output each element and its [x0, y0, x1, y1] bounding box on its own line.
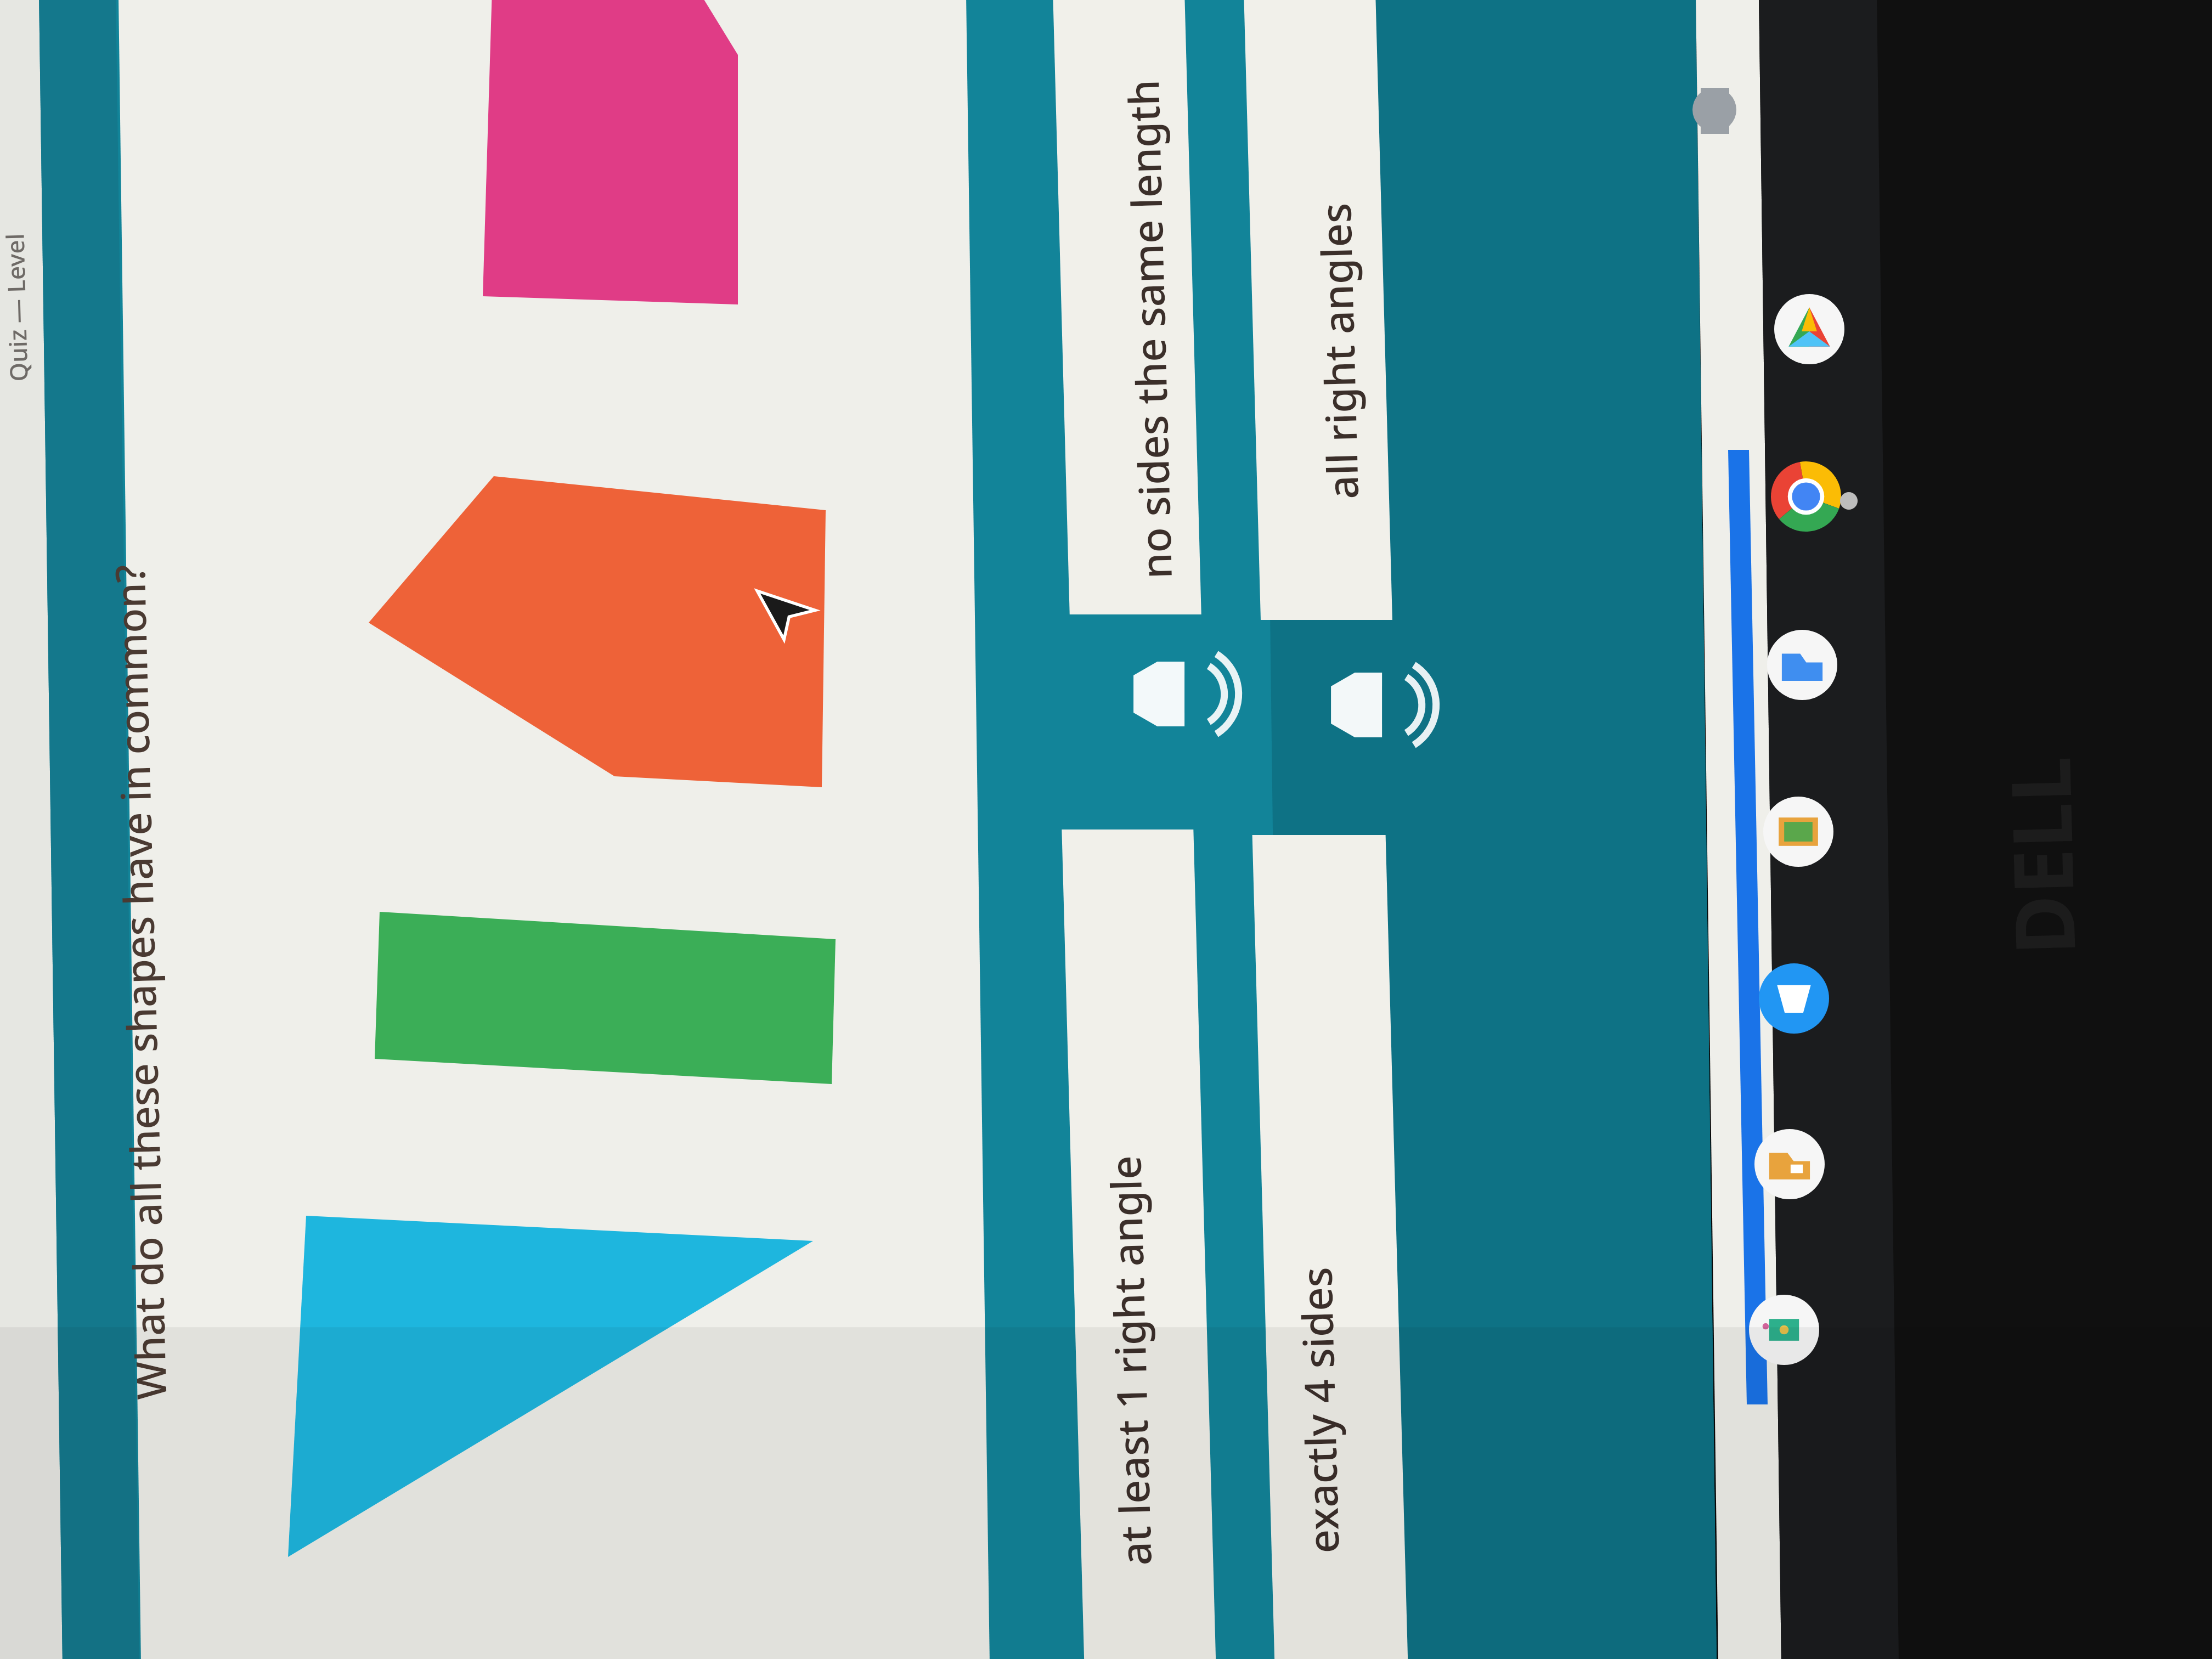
button[interactable]: Quiz: What do all these shapes have in c…	[0, 0, 2212, 1659]
